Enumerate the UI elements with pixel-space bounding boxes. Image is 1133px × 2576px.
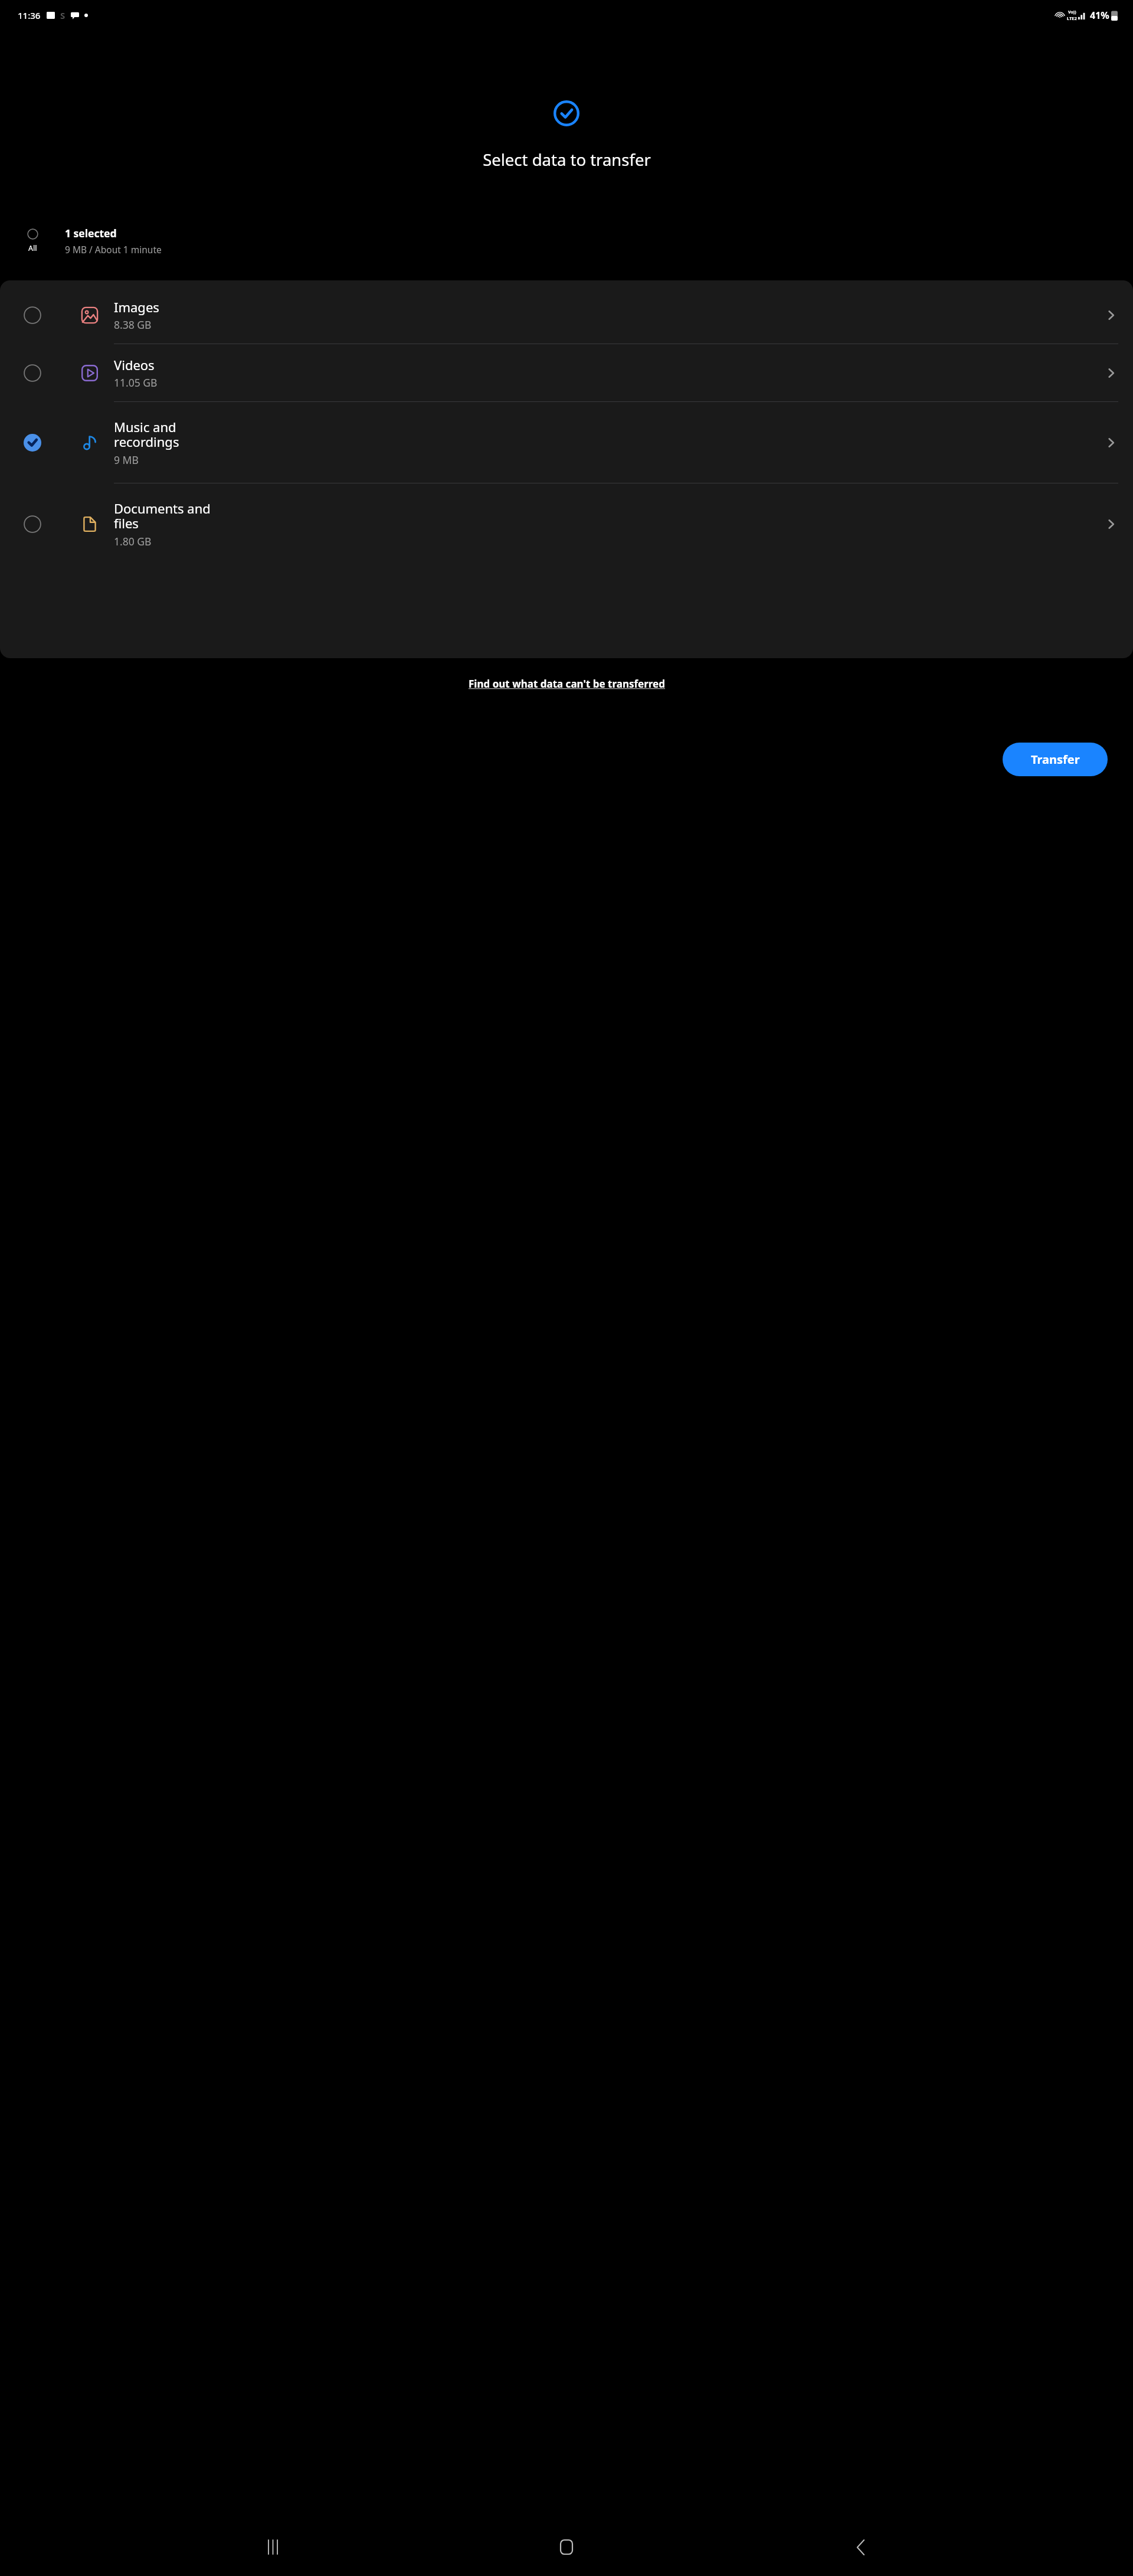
- staticText: 8.38 GB: [114, 318, 152, 332]
- button[interactable]: Music and recordings: [0, 402, 1133, 483]
- staticText: S: [60, 9, 66, 21]
- staticText: Transfer: [1031, 751, 1080, 767]
- staticText: Select data to transfer: [483, 149, 651, 171]
- button[interactable]: Videos: [0, 344, 1133, 401]
- button[interactable]: Open Videos: [1089, 344, 1133, 401]
- staticText: Find out what data can't be transferred: [469, 677, 665, 691]
- button[interactable]: Images: [0, 286, 1133, 344]
- staticText: Documents and files: [114, 499, 211, 532]
- button[interactable]: Home: [545, 2526, 588, 2568]
- staticText: Music and recordings: [114, 418, 179, 451]
- staticText: All: [28, 243, 37, 253]
- button[interactable]: Find out what data can't be transferred: [0, 673, 1133, 694]
- button[interactable]: Open Documents and files: [1089, 483, 1133, 564]
- staticText: 11:36: [18, 9, 41, 21]
- button[interactable]: Recents: [251, 2526, 294, 2568]
- button[interactable]: Open Images: [1089, 286, 1133, 344]
- staticText: 1 selected: [65, 226, 117, 240]
- button[interactable]: All: [0, 225, 1133, 268]
- staticText: 1.80 GB: [114, 534, 152, 548]
- staticText: Images: [114, 298, 159, 316]
- staticText: 11.05 GB: [114, 375, 158, 390]
- staticText: LTE2: [1067, 15, 1077, 21]
- button[interactable]: Documents and files: [0, 483, 1133, 564]
- button[interactable]: Open Music and recordings: [1089, 402, 1133, 483]
- staticText: 9 MB / About 1 minute: [65, 243, 162, 256]
- staticText: Videos: [114, 356, 155, 374]
- staticText: 9 MB: [114, 453, 139, 467]
- button[interactable]: Transfer: [1003, 743, 1108, 776]
- staticText: Vo)): [1068, 9, 1076, 15]
- button[interactable]: Back: [839, 2526, 882, 2568]
- staticText: 41%: [1090, 9, 1109, 22]
